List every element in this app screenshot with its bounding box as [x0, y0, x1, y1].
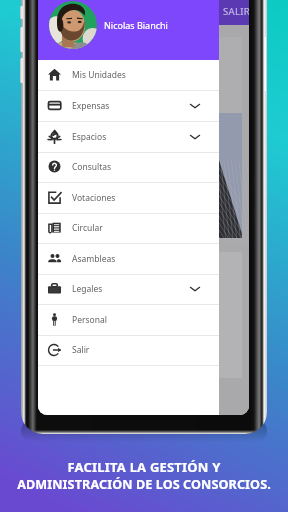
button[interactable]: Consultas: [38, 152, 219, 183]
staticText: Personal: [72, 314, 107, 326]
button[interactable]: Asambleas: [38, 244, 219, 275]
staticText: SALIR: [223, 5, 249, 18]
staticText: Nicolas Bianchi: [104, 19, 168, 31]
button[interactable]: Votaciones: [38, 183, 219, 214]
button[interactable]: Expensas: [38, 91, 219, 122]
staticText: Asambleas: [72, 253, 116, 265]
button[interactable]: Personal: [38, 305, 219, 336]
button[interactable]: Mis Unidades: [38, 60, 219, 91]
staticText: Espacios: [72, 131, 107, 143]
button[interactable]: Espacios: [38, 122, 219, 153]
staticText: Expensas: [72, 100, 110, 112]
staticText: Consultas: [72, 161, 112, 173]
staticText: Mis Unidades: [72, 69, 126, 81]
staticText: FACILITA LA GESTIÓN Y: [0, 458, 288, 476]
staticText: Legales: [72, 283, 103, 295]
staticText: Votaciones: [72, 192, 116, 204]
button[interactable]: Salir: [38, 335, 219, 366]
button[interactable]: Circular: [38, 213, 219, 244]
staticText: ADMINISTRACIÓN DE LOS CONSORCIOS.: [0, 476, 288, 493]
button[interactable]: Legales: [38, 274, 219, 305]
staticText: Salir: [72, 344, 90, 356]
staticText: Circular: [72, 222, 103, 234]
